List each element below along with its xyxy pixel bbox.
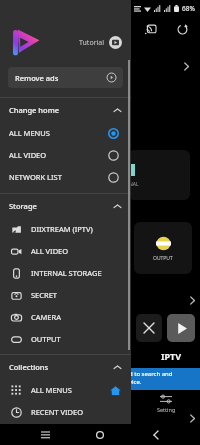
staticText: Collections — [9, 362, 49, 372]
button[interactable]: Cast — [141, 20, 159, 38]
button[interactable]: Back — [145, 424, 167, 445]
staticText: Change home — [9, 105, 60, 115]
button[interactable]: INTERNAL STORAGE — [0, 262, 131, 284]
button[interactable]: Home — [89, 424, 111, 445]
button[interactable]: Recents — [34, 424, 56, 445]
staticText: Remove ads — [15, 73, 59, 83]
button[interactable]: d to search and vice. — [128, 368, 200, 390]
staticText: DIIXTREAM (IPTV) — [31, 224, 93, 234]
staticText: 68% — [182, 4, 195, 13]
button[interactable]: SECRET — [0, 284, 131, 306]
button[interactable]: Refresh — [173, 20, 191, 38]
button[interactable]: RECENT VIDEO — [0, 401, 131, 423]
button[interactable]: Collections — [0, 355, 131, 379]
staticText: NAL — [129, 181, 139, 188]
button[interactable]: ALL MENUS — [0, 122, 131, 144]
button[interactable]: Play — [167, 314, 195, 342]
staticText: OUTPUT — [153, 255, 173, 262]
button[interactable]: ALL MENUS — [0, 379, 131, 401]
button[interactable]: CAMERA — [0, 306, 131, 328]
button[interactable]: More — [186, 412, 198, 424]
button[interactable]: NAL — [128, 150, 190, 200]
staticText: ALL MENUS — [9, 128, 50, 138]
button[interactable]: Tutorial — [77, 34, 124, 51]
staticText: NETWORK LIST — [9, 172, 62, 182]
button[interactable]: More — [180, 60, 192, 72]
staticText: SECRET — [31, 290, 58, 300]
staticText: OUTPUT — [31, 334, 61, 344]
staticText: ALL MENUS — [31, 385, 72, 395]
staticText: Setting — [157, 406, 176, 413]
button[interactable]: ALL VIDEO — [0, 240, 131, 262]
staticText: CAMERA — [31, 312, 61, 322]
staticText: d to search and vice. — [129, 370, 173, 386]
button[interactable]: DIIXTREAM (IPTV) — [0, 218, 131, 240]
button[interactable]: Close — [136, 314, 162, 342]
button[interactable]: NETWORK LIST — [0, 166, 131, 188]
button[interactable]: More — [186, 294, 198, 306]
staticText: Tutorial — [79, 38, 105, 48]
staticText: ALL VIDEO — [31, 246, 69, 256]
staticText: Storage — [9, 201, 37, 211]
button[interactable]: ALL VIDEO — [0, 144, 131, 166]
button[interactable]: Remove ads — [8, 67, 123, 88]
staticText: INTERNAL STORAGE — [31, 268, 102, 278]
staticText: IPTV — [161, 350, 182, 362]
button[interactable]: Change home — [0, 98, 131, 122]
button[interactable]: OUTPUT — [134, 222, 192, 274]
button[interactable]: Storage — [0, 194, 131, 218]
staticText: RECENT VIDEO — [31, 407, 84, 417]
button[interactable]: OUTPUT — [0, 328, 131, 350]
staticText: ALL VIDEO — [9, 150, 47, 160]
